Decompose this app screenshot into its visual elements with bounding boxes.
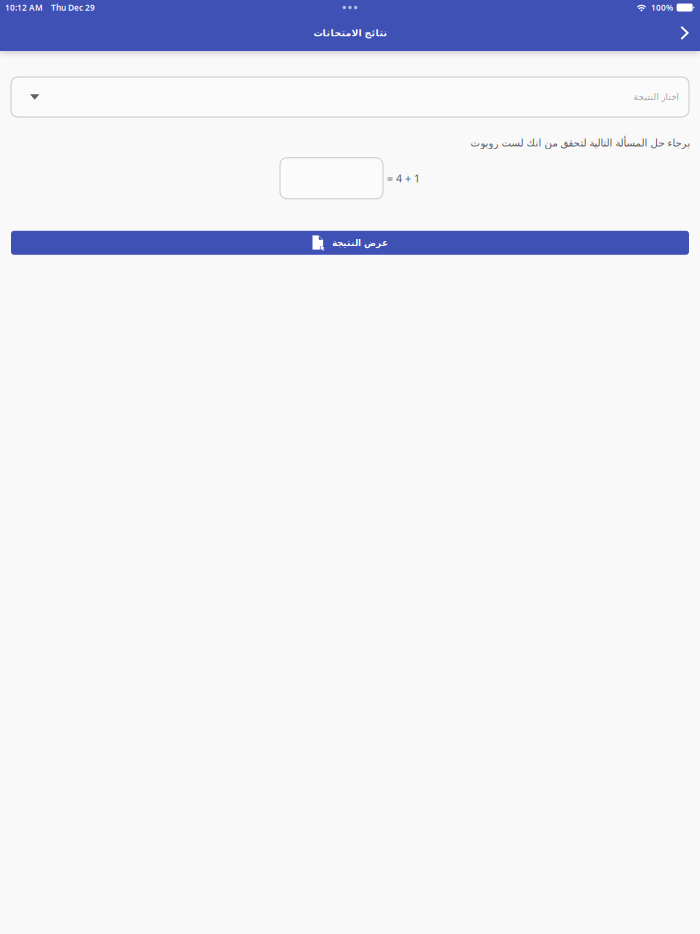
button[interactable]: Back [666, 15, 700, 51]
button[interactable]: اختار النتيجة [11, 77, 689, 117]
staticText: Thu Dec 29 [51, 2, 95, 13]
button[interactable]: عرض النتيجة [11, 231, 689, 255]
staticText: نتائج الامتحانات [313, 28, 387, 38]
staticText: اختار النتيجة [633, 92, 678, 102]
staticText: عرض النتيجة [331, 238, 387, 248]
staticText: 10:12 AM [5, 2, 43, 13]
staticText: برجاء حل المسألة التالية لتحقق من انك لس… [470, 137, 690, 149]
staticText: 100% [651, 2, 673, 13]
staticText: = 4 + 1 [387, 171, 420, 185]
